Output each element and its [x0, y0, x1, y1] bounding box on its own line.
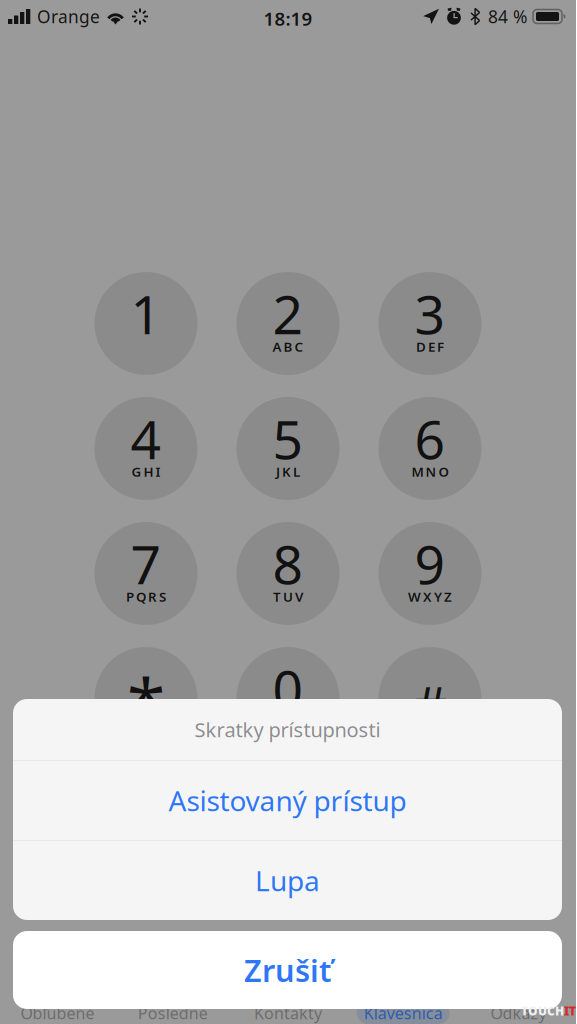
- button[interactable]: 7: [94, 522, 197, 625]
- button[interactable]: 6: [378, 397, 481, 500]
- staticText: 5: [272, 403, 303, 474]
- staticText: 6: [414, 403, 445, 474]
- staticText: D E F: [416, 338, 444, 355]
- button[interactable]: Kontakty: [230, 1002, 346, 1024]
- staticText: 18:19: [263, 6, 312, 31]
- staticText: +: [284, 713, 292, 730]
- button[interactable]: #: [378, 647, 481, 750]
- staticText: Odkazy: [490, 1002, 546, 1024]
- staticText: 8: [272, 528, 303, 599]
- staticText: Lupa: [255, 862, 320, 899]
- button[interactable]: 3: [378, 272, 481, 375]
- button[interactable]: 5: [236, 397, 339, 500]
- button[interactable]: 0: [236, 647, 339, 750]
- staticText: 3: [414, 278, 445, 349]
- staticText: Posledné: [138, 1002, 208, 1024]
- button[interactable]: *: [94, 647, 197, 750]
- staticText: 4: [130, 403, 161, 474]
- staticText: T U V: [273, 588, 303, 605]
- staticText: #: [413, 669, 447, 740]
- button[interactable]: 1: [94, 272, 197, 375]
- button[interactable]: Klávesnica: [346, 1002, 461, 1024]
- button[interactable]: Lupa: [13, 841, 562, 920]
- staticText: *: [127, 656, 165, 749]
- staticText: 84 %: [488, 5, 527, 28]
- button[interactable]: Asistovaný prístup: [13, 761, 562, 840]
- staticText: W X Y Z: [408, 588, 452, 605]
- button[interactable]: 2: [236, 272, 339, 375]
- button[interactable]: Zrušiť: [13, 931, 562, 1009]
- staticText: A B C: [272, 338, 303, 355]
- button[interactable]: Odkazy: [461, 1002, 576, 1024]
- staticText: TOUCH: [521, 1003, 564, 1019]
- button[interactable]: 9: [378, 522, 481, 625]
- staticText: Klávesnica: [364, 1002, 443, 1024]
- staticText: 1: [130, 278, 161, 349]
- staticText: Zrušiť: [244, 950, 331, 990]
- staticText: 9: [414, 528, 445, 599]
- staticText: G H I: [131, 463, 160, 480]
- staticText: J K L: [276, 463, 300, 480]
- button[interactable]: Posledné: [115, 1002, 230, 1024]
- button[interactable]: Obľúbené: [0, 1002, 115, 1024]
- staticText: 0: [272, 653, 303, 724]
- staticText: Obľúbené: [21, 1002, 95, 1024]
- staticText: Asistovaný prístup: [168, 782, 406, 819]
- staticText: Orange: [37, 5, 100, 28]
- staticText: Kontakty: [254, 1002, 322, 1024]
- button[interactable]: 4: [94, 397, 197, 500]
- staticText: Skratky prístupnosti: [194, 716, 380, 743]
- staticText: 2: [272, 278, 303, 349]
- staticText: 7: [130, 528, 161, 599]
- staticText: M N O: [411, 463, 448, 480]
- staticText: IT: [564, 1003, 576, 1019]
- button[interactable]: 8: [236, 522, 339, 625]
- staticText: P Q R S: [126, 588, 166, 605]
